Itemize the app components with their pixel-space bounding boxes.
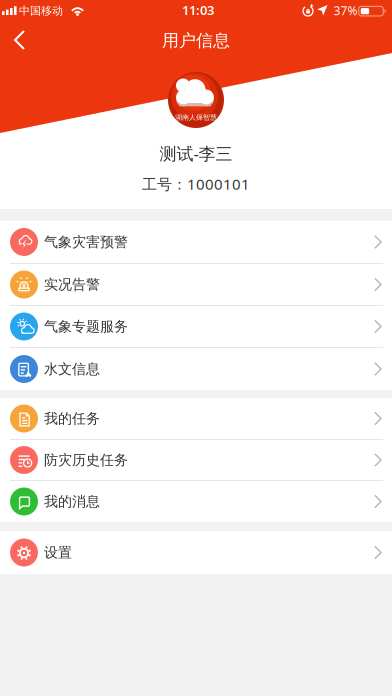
button[interactable]: 气象专题服务 — [0, 306, 392, 347]
button[interactable]: 我的任务 — [0, 398, 392, 439]
staticText: 我的消息 — [44, 493, 100, 510]
staticText: 气象灾害预警 — [44, 233, 128, 251]
button[interactable]: 实况告警 — [0, 264, 392, 305]
staticText: 测试-李三 — [159, 142, 232, 165]
button[interactable]: 返回 — [13, 30, 25, 50]
button[interactable]: 气象灾害预警 — [0, 221, 392, 263]
staticText: 设置 — [44, 544, 72, 561]
staticText: 11:03 — [182, 1, 214, 19]
staticText: 防灾历史任务 — [44, 451, 128, 469]
staticText: 实况告警 — [44, 276, 100, 293]
button[interactable]: 设置 — [0, 531, 392, 574]
staticText: 37% — [333, 2, 357, 18]
staticText: 工号：1000101 — [142, 174, 250, 194]
button[interactable]: 防灾历史任务 — [0, 440, 392, 480]
staticText: 气象专题服务 — [44, 318, 128, 335]
staticText: 水文信息 — [44, 360, 100, 378]
staticText: 中国移动 — [19, 4, 63, 17]
staticText: 湖南人保智慧 — [175, 113, 217, 122]
button[interactable]: 水文信息 — [0, 348, 392, 390]
button[interactable]: 我的消息 — [0, 481, 392, 522]
staticText: 我的任务 — [44, 410, 100, 427]
staticText: 用户信息 — [162, 30, 230, 51]
